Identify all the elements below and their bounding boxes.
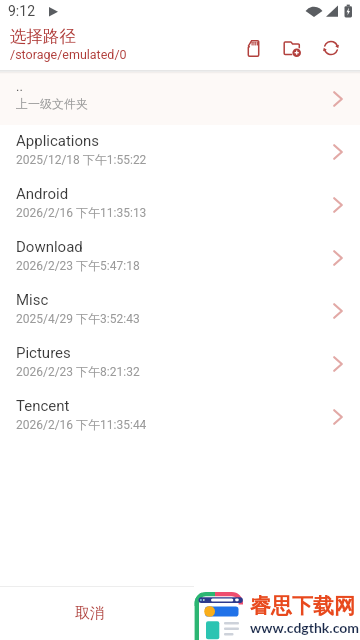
staticText: 确定	[255, 604, 285, 623]
staticText: 2025/4/29 下午3:52:43	[16, 311, 140, 326]
staticText: 2026/2/23 下午8:21:32	[16, 364, 140, 379]
staticText: Android	[16, 185, 69, 203]
button[interactable]: 取消	[0, 587, 180, 640]
button[interactable]: Android	[0, 178, 360, 231]
button[interactable]: 确定	[180, 587, 360, 640]
staticText: 上一级文件夹	[16, 96, 88, 111]
staticText: ..	[16, 79, 23, 94]
staticText: Download	[16, 238, 83, 256]
button[interactable]	[281, 37, 303, 59]
button[interactable]: ..	[0, 72, 360, 125]
staticText: Applications	[16, 132, 100, 150]
staticText: www.cdgthk.com	[250, 619, 360, 636]
button[interactable]: Applications	[0, 125, 360, 178]
staticText: /storage/emulated/0	[10, 47, 127, 62]
staticText: 2026/2/23 下午5:47:18	[16, 258, 140, 273]
staticText: Misc	[16, 291, 49, 309]
button[interactable]: Misc	[0, 284, 360, 337]
button[interactable]	[242, 37, 264, 59]
staticText: 2025/12/18 下午1:55:22	[16, 152, 147, 167]
staticText: 2026/2/16 下午11:35:13	[16, 205, 147, 220]
staticText: 取消	[75, 604, 105, 623]
button[interactable]: Tencent	[0, 390, 360, 443]
button[interactable]	[320, 37, 342, 59]
staticText: 9:12	[8, 3, 35, 19]
staticText: 2026/2/16 下午11:35:44	[16, 417, 147, 432]
staticText: 睿思下载网	[250, 593, 355, 619]
staticText: 选择路径	[10, 26, 76, 47]
staticText: Tencent	[16, 397, 70, 415]
button[interactable]: Download	[0, 231, 360, 284]
staticText: Pictures	[16, 344, 71, 362]
button[interactable]: Pictures	[0, 337, 360, 390]
